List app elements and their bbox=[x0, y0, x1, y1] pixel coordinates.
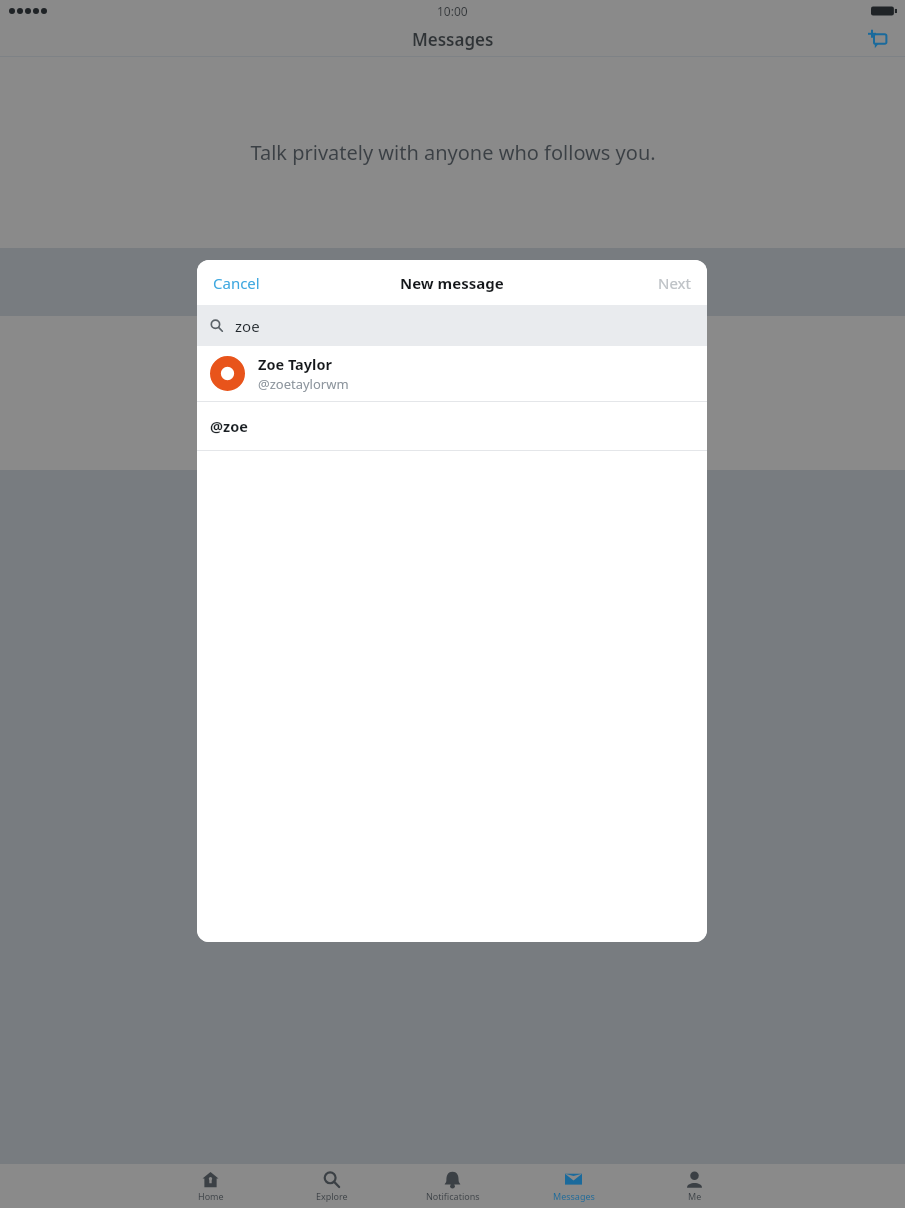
button[interactable]: Zoe Taylor bbox=[197, 346, 707, 401]
staticText: Messages bbox=[412, 28, 494, 51]
button[interactable]: Cancel bbox=[203, 267, 270, 299]
button[interactable]: Next bbox=[648, 267, 701, 299]
button[interactable]: @zoe bbox=[197, 402, 707, 450]
button[interactable]: New message bbox=[861, 22, 895, 56]
button[interactable]: Explore bbox=[271, 1164, 392, 1208]
button[interactable]: Messages bbox=[513, 1164, 634, 1208]
staticText: @zoetaylorwm bbox=[258, 375, 349, 393]
button[interactable]: Notifications bbox=[392, 1164, 513, 1208]
button[interactable]: Me bbox=[634, 1164, 755, 1208]
button[interactable]: zoe bbox=[197, 305, 707, 346]
staticText: Talk privately with anyone who follows y… bbox=[250, 139, 656, 166]
staticText: New message bbox=[400, 273, 504, 293]
staticText: Home bbox=[198, 1190, 224, 1202]
staticText: Me bbox=[688, 1190, 702, 1202]
staticText: Zoe Taylor bbox=[258, 354, 332, 374]
staticText: @zoe bbox=[210, 416, 248, 436]
staticText: Next bbox=[658, 273, 691, 293]
button[interactable]: Home bbox=[150, 1164, 271, 1208]
staticText: zoe bbox=[235, 316, 260, 336]
staticText: Explore bbox=[316, 1190, 348, 1202]
staticText: Cancel bbox=[213, 273, 260, 293]
staticText: Notifications bbox=[426, 1190, 480, 1202]
staticText: 10:00 bbox=[437, 3, 468, 19]
staticText: Messages bbox=[553, 1190, 595, 1202]
